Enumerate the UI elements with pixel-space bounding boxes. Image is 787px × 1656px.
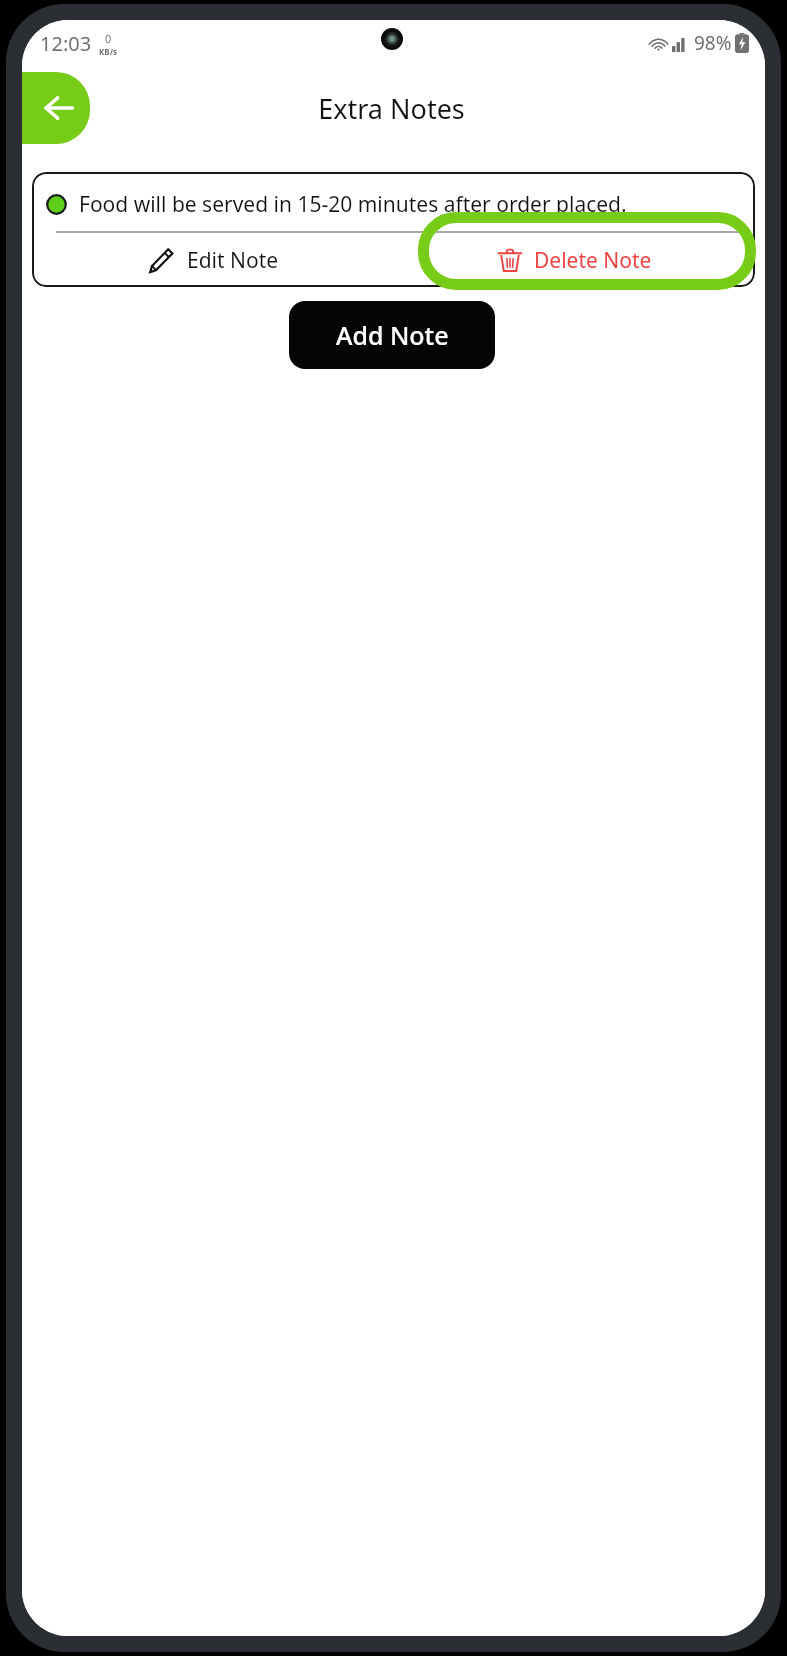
staticText: 0 — [105, 31, 112, 46]
button[interactable]: Delete Note — [393, 233, 755, 287]
staticText: 98% — [694, 30, 732, 56]
staticText: 12:03 — [40, 30, 92, 57]
staticText: Add Note — [336, 318, 449, 352]
button[interactable]: Add Note — [289, 301, 495, 369]
button[interactable]: Back — [22, 72, 90, 144]
staticText: KB/s — [99, 46, 117, 57]
staticText: Extra Notes — [318, 90, 465, 127]
button[interactable]: Edit Note — [32, 233, 393, 287]
staticText: Delete Note — [534, 246, 652, 275]
staticText: Food will be served in 15-20 minutes aft… — [79, 190, 627, 219]
staticText: Edit Note — [187, 246, 279, 275]
